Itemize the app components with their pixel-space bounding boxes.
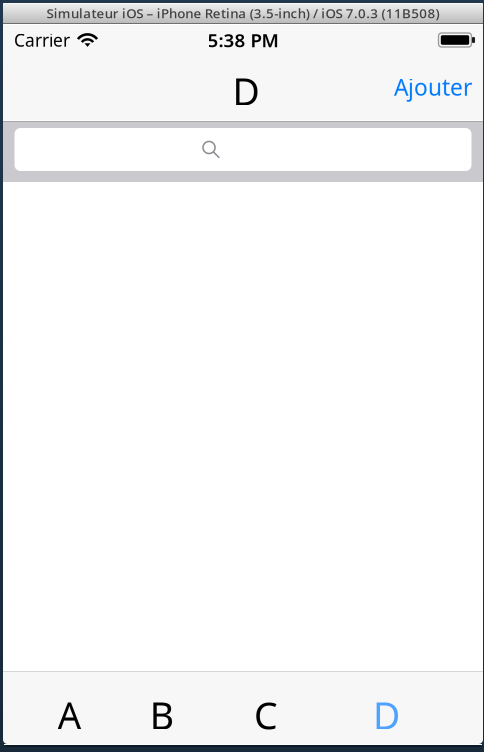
staticText: B (150, 690, 174, 740)
staticText: 5:38 PM (207, 28, 278, 52)
staticText: Simulateur iOS – iPhone Retina (3.5-inch… (47, 4, 439, 22)
button[interactable] (14, 128, 471, 171)
staticText: A (58, 690, 82, 740)
button[interactable]: B (123, 672, 243, 744)
button[interactable]: C (243, 672, 363, 744)
staticText: D (373, 690, 400, 740)
staticText: Ajouter (394, 72, 472, 102)
button[interactable]: Ajouter (378, 61, 483, 115)
button[interactable]: A (3, 672, 123, 744)
staticText: C (254, 690, 278, 740)
staticText: D (232, 66, 259, 116)
button[interactable]: D (363, 672, 483, 744)
staticText: Carrier (14, 28, 70, 51)
